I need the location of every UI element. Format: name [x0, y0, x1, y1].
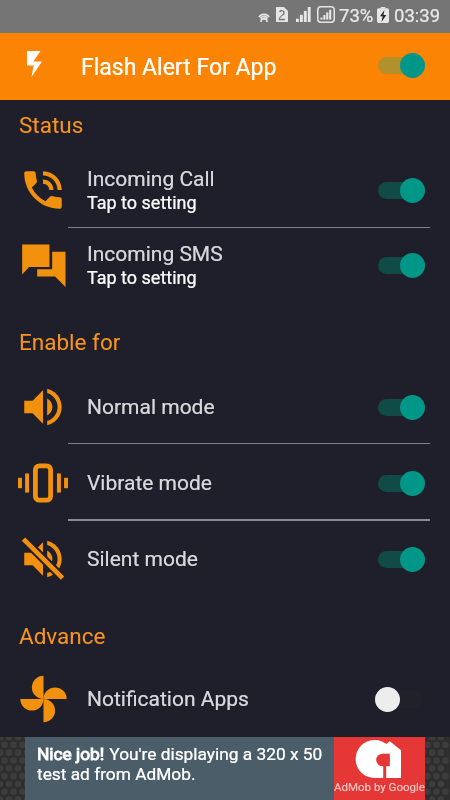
button[interactable]: Nice job! — [25, 737, 334, 800]
staticText: Incoming SMS — [87, 242, 223, 267]
staticText: Normal mode — [87, 395, 215, 420]
staticText: 73% — [339, 5, 374, 27]
button[interactable]: AdMob ad — [334, 737, 425, 800]
staticText: Flash Alert For App — [81, 54, 277, 81]
button[interactable]: Toggle — [373, 391, 427, 423]
staticText: Notification Apps — [87, 687, 249, 712]
staticText: Incoming Call — [87, 167, 215, 192]
staticText: Tap to setting — [87, 267, 197, 288]
button[interactable]: Normal mode — [0, 370, 450, 444]
staticText: 03:39 — [394, 5, 441, 27]
staticText: Silent mode — [87, 547, 198, 572]
staticText: AdMob by Google — [334, 780, 425, 793]
button[interactable]: Toggle — [373, 249, 427, 281]
button[interactable]: Toggle — [373, 49, 427, 81]
button[interactable]: Toggle — [373, 543, 427, 575]
staticText: Tap to setting — [87, 192, 197, 213]
button[interactable]: Vibrate mode — [0, 446, 450, 520]
button[interactable]: Notification Apps — [0, 662, 450, 736]
button[interactable]: Toggle — [373, 174, 427, 206]
button[interactable]: Toggle — [373, 683, 427, 715]
button[interactable]: Silent mode — [0, 522, 450, 596]
staticText: Vibrate mode — [87, 471, 212, 496]
staticText: Nice job! — [37, 744, 105, 764]
button[interactable]: Incoming SMS — [0, 228, 450, 302]
staticText: Status — [19, 112, 84, 138]
staticText: test ad from AdMob. — [37, 764, 196, 784]
button[interactable]: Toggle — [373, 467, 427, 499]
button[interactable]: Incoming Call — [0, 153, 450, 227]
staticText: You're displaying a 320 x 50 — [105, 744, 323, 764]
button[interactable]: Flash alert — [27, 51, 42, 77]
staticText: Advance — [19, 623, 106, 649]
staticText: Enable for — [19, 329, 121, 355]
